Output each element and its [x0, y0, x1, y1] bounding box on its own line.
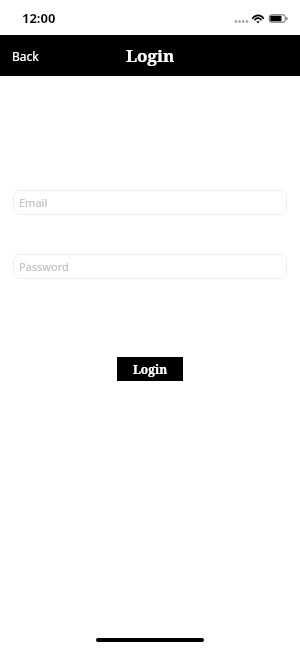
button[interactable]: Password	[13, 254, 287, 279]
button[interactable]: Back	[0, 35, 51, 76]
button[interactable]: Email	[13, 190, 287, 215]
staticText: Login	[133, 361, 168, 377]
other: Signal, Wi-Fi and battery status	[230, 10, 290, 26]
staticText: Login	[126, 44, 175, 67]
staticText: 12:00	[22, 9, 56, 27]
staticText: Email	[19, 195, 48, 210]
button[interactable]: Login	[117, 357, 183, 381]
staticText: Back	[12, 48, 39, 64]
staticText: Password	[19, 259, 69, 274]
